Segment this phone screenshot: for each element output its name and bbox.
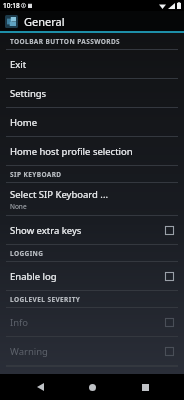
button[interactable]: Home host profile selection [0, 137, 184, 165]
button[interactable]: Settings [0, 79, 184, 107]
button[interactable]: Warning [0, 337, 184, 365]
button[interactable]: Show extra keys [0, 216, 184, 244]
staticText: Home host profile selection [10, 145, 133, 158]
staticText: Info [10, 316, 165, 329]
staticText: TOOLBAR BUTTON PASSWORDS [10, 37, 121, 46]
staticText: SIP KEYBOARD [10, 170, 62, 179]
button[interactable]: Home [79, 374, 105, 400]
button[interactable]: Info [0, 308, 184, 336]
button[interactable]: Back [27, 374, 53, 400]
button[interactable]: Select SIP Keyboard ... [0, 183, 184, 215]
other: App icon [5, 15, 18, 28]
staticText: Select SIP Keyboard ... [10, 188, 108, 201]
staticText: General [24, 14, 65, 29]
button[interactable]: Home [0, 108, 184, 136]
staticText: LOGLEVEL SEVERITY [10, 295, 81, 304]
staticText: Home [10, 116, 38, 129]
button[interactable]: Exit [0, 50, 184, 78]
staticText: Warning [10, 345, 165, 358]
button[interactable]: Recent apps [132, 374, 158, 400]
staticText: 10:18 [3, 1, 20, 10]
staticText: Enable log [10, 270, 165, 283]
button[interactable]: Enable log [0, 262, 184, 290]
staticText: Show extra keys [10, 224, 165, 237]
staticText: None [10, 202, 27, 211]
staticText: LOGGING [10, 249, 44, 258]
staticText: Settings [10, 87, 47, 100]
staticText: Exit [10, 58, 27, 71]
